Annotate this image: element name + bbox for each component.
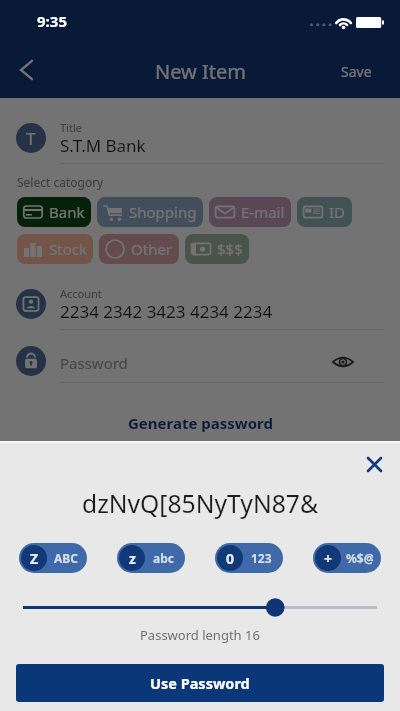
staticText: Select catogory <box>17 174 104 190</box>
button[interactable]: Generate password <box>118 408 283 438</box>
staticText: 0 <box>226 549 235 568</box>
staticText: T <box>26 127 36 150</box>
staticText: 9:35 <box>37 11 67 31</box>
button[interactable]: Z <box>19 543 87 573</box>
button[interactable]: Show password <box>329 348 357 376</box>
staticText: Use Password <box>150 673 250 693</box>
staticText: Bank <box>49 202 85 222</box>
staticText: Account <box>60 286 102 301</box>
staticText: E-mail <box>241 202 285 222</box>
staticText: New Item <box>155 58 246 85</box>
button[interactable]: Use Password <box>16 664 384 702</box>
staticText: Save <box>341 62 372 81</box>
staticText: $$$ <box>217 239 243 259</box>
button[interactable]: ID <box>297 197 352 227</box>
staticText: %$@ <box>346 550 373 566</box>
button[interactable]: z <box>117 543 185 573</box>
staticText: ABC <box>54 550 78 566</box>
button[interactable]: + <box>313 543 381 573</box>
staticText: Password <box>60 353 128 373</box>
button[interactable]: Shopping <box>97 197 203 227</box>
staticText: Password length 16 <box>140 626 260 644</box>
button[interactable]: Save <box>329 58 384 85</box>
staticText: 123 <box>251 550 272 566</box>
button[interactable]: Bank <box>17 197 91 227</box>
staticText: 2234 2342 3423 4234 2234 <box>60 300 273 323</box>
staticText: Title <box>60 120 82 135</box>
staticText: z <box>129 549 136 568</box>
staticText: + <box>324 549 333 568</box>
staticText: abc <box>153 550 174 566</box>
staticText: Generate password <box>128 413 273 433</box>
staticText: Other <box>131 239 173 259</box>
button[interactable]: Other <box>99 234 179 264</box>
button[interactable]: 0 <box>215 543 283 573</box>
button[interactable]: $$$ <box>185 234 249 264</box>
button[interactable]: Stock <box>17 234 93 264</box>
staticText: ID <box>329 202 346 222</box>
staticText: dzNvQ[85NyTyN87& <box>82 487 318 521</box>
staticText: Z <box>30 549 39 568</box>
button[interactable]: E-mail <box>209 197 291 227</box>
staticText: Shopping <box>129 202 197 222</box>
staticText: S.T.M Bank <box>60 134 146 157</box>
staticText: Stock <box>49 239 87 259</box>
button[interactable]: Close <box>361 451 387 477</box>
button[interactable]: Back <box>6 50 46 90</box>
